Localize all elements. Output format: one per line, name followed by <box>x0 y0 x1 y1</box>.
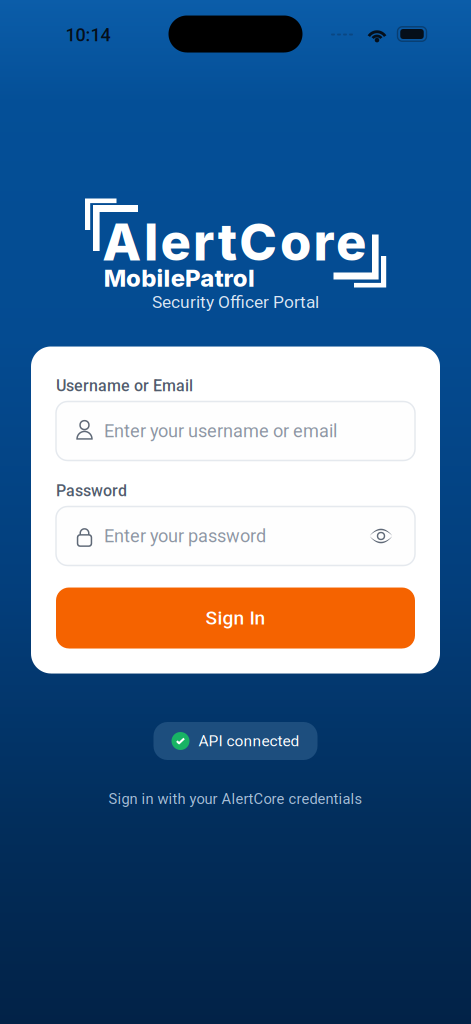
staticText: Sign In <box>205 607 265 629</box>
button[interactable]: Show password <box>355 506 415 565</box>
staticText: Sign in with your AlertCore credentials <box>108 790 362 808</box>
staticText: Enter your username or email <box>104 420 337 442</box>
staticText: AlertCore <box>102 211 380 273</box>
staticText: Username or Email <box>56 376 193 395</box>
staticText: 10:14 <box>65 24 110 46</box>
staticText: Enter your password <box>104 525 266 547</box>
staticText: MobilePatrol <box>104 263 260 292</box>
staticText: Security Officer Portal <box>152 292 319 312</box>
staticText: Password <box>56 481 127 500</box>
button[interactable]: Sign In <box>56 587 415 648</box>
staticText: API connected <box>198 732 299 750</box>
